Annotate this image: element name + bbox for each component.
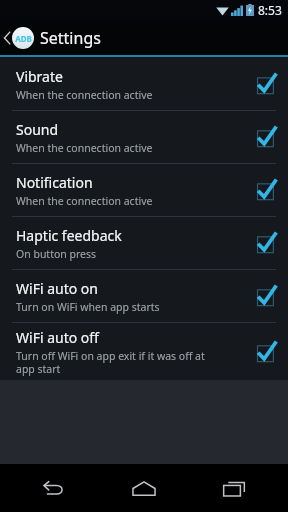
button[interactable]: Toggle, checked <box>252 124 278 150</box>
staticText: Haptic feedback <box>16 226 122 245</box>
button[interactable]: Toggle, checked <box>252 283 278 309</box>
staticText: When the connection active <box>16 194 206 208</box>
staticText: When the connection active <box>16 88 206 102</box>
button[interactable]: Toggle, checked <box>252 339 278 365</box>
staticText: 8:53 <box>258 2 282 18</box>
button[interactable]: Vibrate <box>0 58 288 110</box>
button[interactable]: Back <box>18 464 90 512</box>
button[interactable]: Toggle, checked <box>252 230 278 256</box>
staticText: On button press <box>16 247 206 261</box>
button[interactable]: WiFi auto on <box>0 270 288 322</box>
button[interactable]: Haptic feedback <box>0 217 288 269</box>
button[interactable]: Notification <box>0 164 288 216</box>
button[interactable]: Toggle, checked <box>252 71 278 97</box>
staticText: Turn on WiFi when app starts <box>16 300 206 314</box>
button[interactable]: Sound <box>0 111 288 163</box>
staticText: WiFi auto on <box>16 279 98 298</box>
staticText: WiFi auto off <box>16 328 99 347</box>
button[interactable]: WiFi auto off <box>0 323 288 380</box>
staticText: Sound <box>16 120 59 139</box>
staticText: Vibrate <box>16 67 63 86</box>
button[interactable]: Home <box>108 464 180 512</box>
staticText: ADB <box>15 33 32 44</box>
staticText: When the connection active <box>16 141 206 155</box>
button[interactable]: Up, Settings <box>0 20 288 55</box>
button[interactable]: Recent apps <box>198 464 270 512</box>
staticText: Turn off WiFi on app exit if it was off … <box>16 349 206 376</box>
staticText: Settings <box>40 27 101 49</box>
staticText: Notification <box>16 173 93 192</box>
button[interactable]: Toggle, checked <box>252 177 278 203</box>
